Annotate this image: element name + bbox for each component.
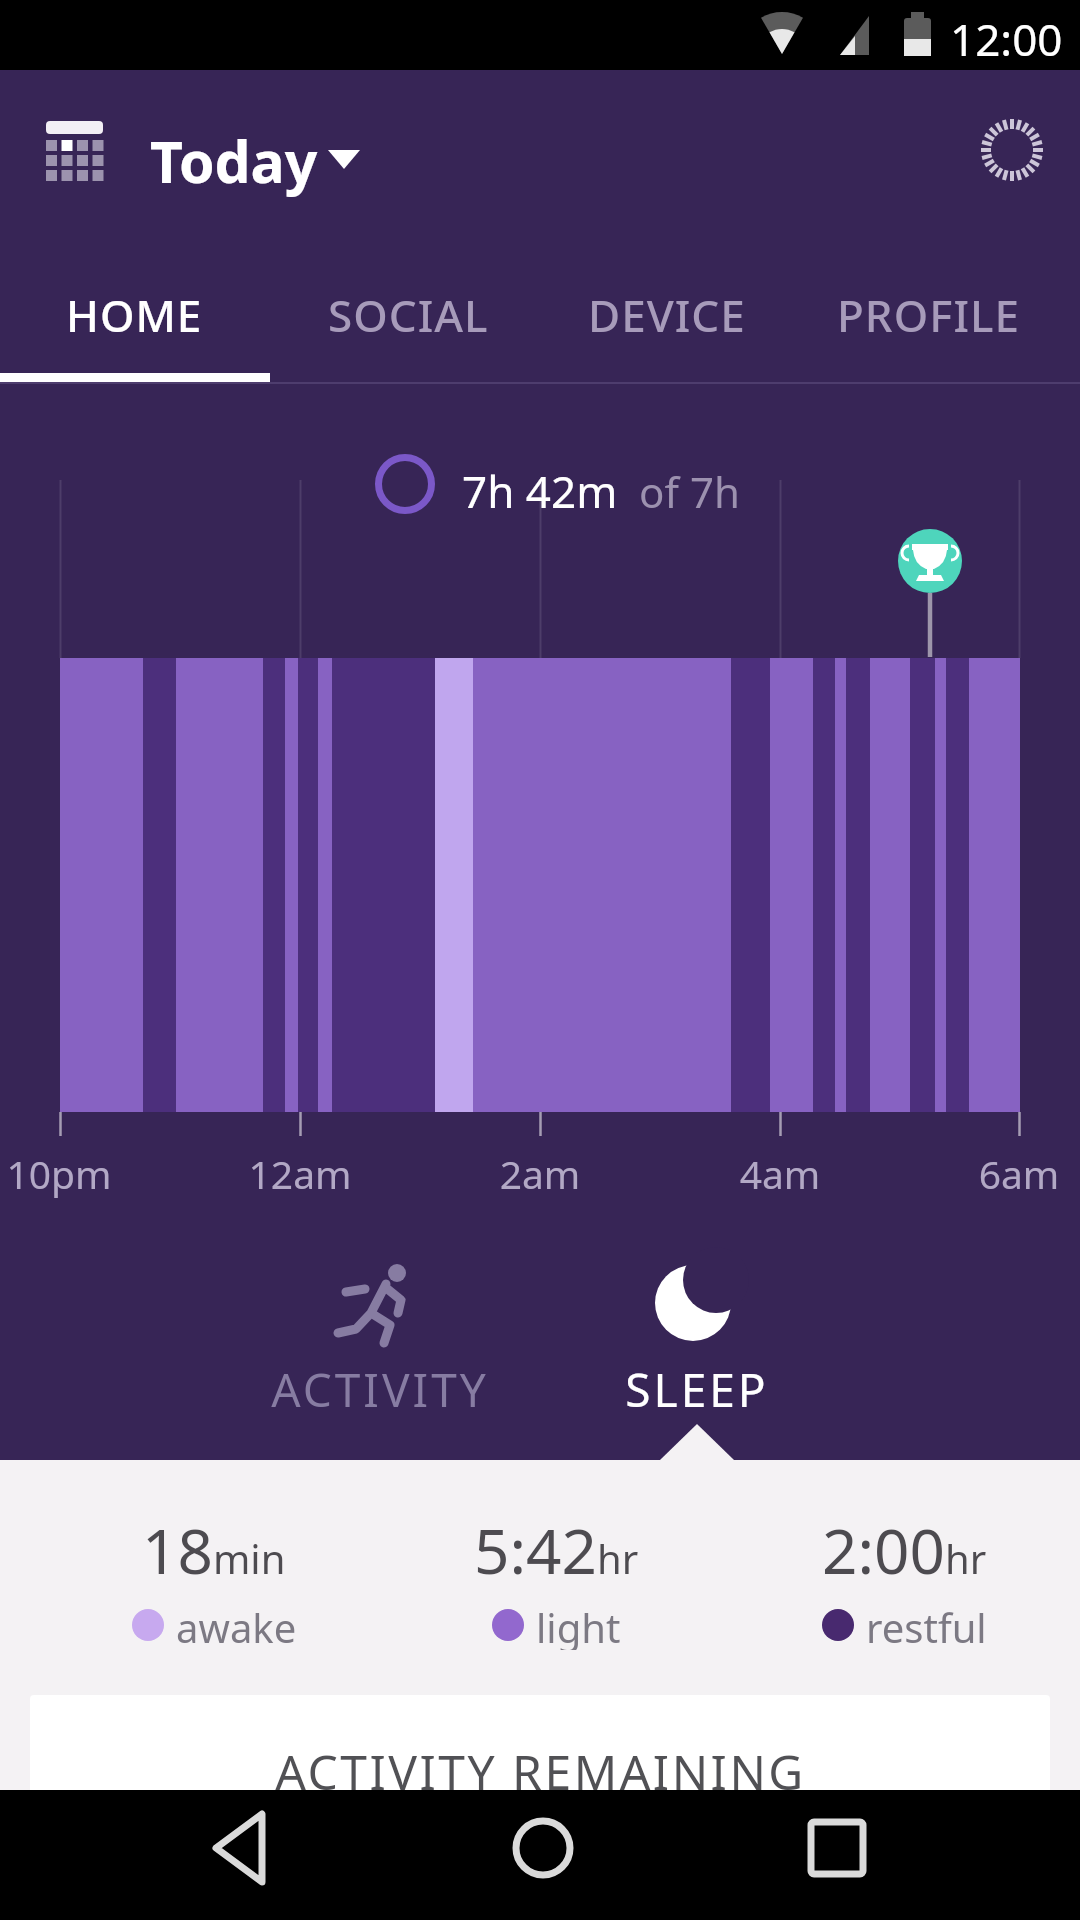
- button[interactable]: [772, 1790, 902, 1920]
- button[interactable]: ACTIVITY REMAINING: [30, 1695, 1050, 1920]
- staticText: 12:00: [950, 9, 1070, 69]
- staticText: light: [536, 1600, 621, 1650]
- button[interactable]: [176, 1790, 306, 1920]
- staticText: SOCIAL: [328, 285, 489, 345]
- button[interactable]: DEVICE: [532, 282, 802, 348]
- staticText: 2:00hr: [822, 1508, 987, 1592]
- staticText: HOME: [66, 285, 203, 345]
- button[interactable]: [478, 1790, 608, 1920]
- staticText: 12am: [230, 1147, 370, 1200]
- staticText: DEVICE: [588, 285, 746, 345]
- staticText: SLEEP: [547, 1358, 847, 1421]
- staticText: 4am: [710, 1147, 850, 1200]
- staticText: 7h 42m of 7h: [462, 461, 740, 521]
- button[interactable]: SOCIAL: [273, 282, 543, 348]
- staticText: awake: [176, 1600, 297, 1650]
- button[interactable]: [580, 1250, 820, 1420]
- staticText: 6am: [949, 1147, 1080, 1200]
- staticText: ACTIVITY: [180, 1358, 580, 1421]
- staticText: 10pm: [0, 1147, 129, 1200]
- staticText: Today: [150, 122, 400, 200]
- button[interactable]: [260, 1250, 500, 1420]
- button[interactable]: [370, 455, 680, 519]
- staticText: ACTIVITY REMAINING: [275, 1739, 806, 1804]
- staticText: 2am: [470, 1147, 610, 1200]
- staticText: PROFILE: [837, 285, 1020, 345]
- staticText: 18min: [142, 1508, 286, 1592]
- button[interactable]: PROFILE: [793, 282, 1063, 348]
- button[interactable]: [30, 105, 360, 195]
- staticText: 5:42hr: [474, 1508, 639, 1592]
- staticText: restful: [866, 1600, 987, 1650]
- button[interactable]: HOME: [0, 282, 269, 348]
